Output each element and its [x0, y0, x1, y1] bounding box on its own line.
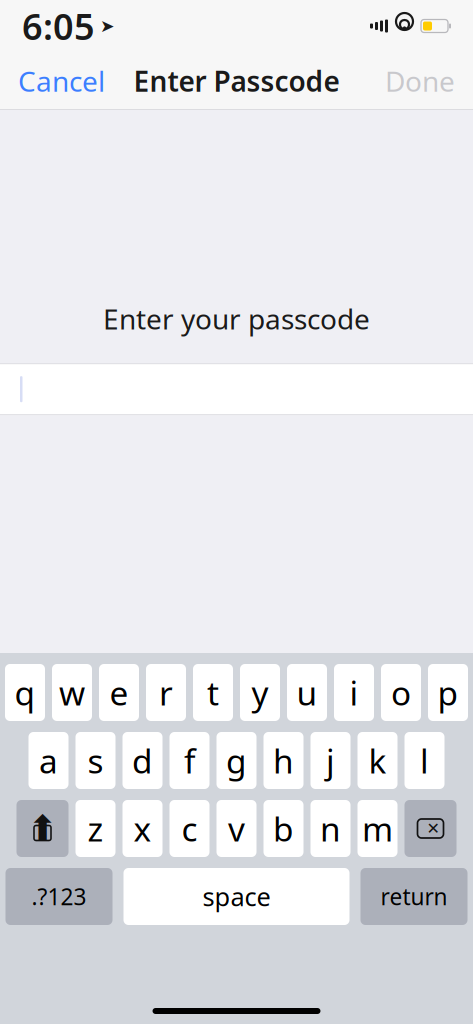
button[interactable]: q [5, 664, 45, 721]
staticText: p [437, 670, 458, 715]
staticText: Enter Passcode [133, 62, 339, 100]
button[interactable]: s [75, 732, 115, 789]
staticText: .?123 [31, 881, 86, 911]
staticText: s [87, 738, 103, 783]
button[interactable]: u [287, 664, 327, 721]
staticText: ✕ [426, 819, 439, 838]
button[interactable]: x [122, 800, 162, 857]
button[interactable]: o [381, 664, 421, 721]
button[interactable]: return [360, 868, 467, 925]
staticText: o [391, 670, 411, 715]
staticText: x [133, 806, 151, 851]
staticText: q [14, 670, 35, 715]
staticText: Cancel [18, 62, 105, 100]
button[interactable]: h [263, 732, 303, 789]
staticText: space [202, 880, 270, 913]
button[interactable]: c [169, 800, 209, 857]
staticText: t [207, 670, 219, 715]
staticText: Done [385, 62, 455, 100]
staticText: c [181, 806, 197, 851]
button[interactable]: y [240, 664, 280, 721]
staticText: e [109, 670, 128, 715]
button[interactable]: e [99, 664, 139, 721]
button[interactable]: .?123 [5, 868, 112, 925]
staticText: a [39, 738, 58, 783]
staticText: n [320, 806, 341, 851]
button[interactable]: j [310, 732, 350, 789]
button[interactable]: p [428, 664, 468, 721]
button[interactable]: n [310, 800, 350, 857]
button[interactable]: d [122, 732, 162, 789]
staticText: j [326, 738, 335, 783]
button[interactable]: m [357, 800, 397, 857]
staticText: ➤ [100, 16, 115, 36]
button[interactable]: i [334, 664, 374, 721]
button[interactable]: Delete [404, 800, 456, 857]
staticText: Enter your passcode [103, 300, 370, 337]
button[interactable]: l [404, 732, 444, 789]
staticText: return [380, 881, 447, 911]
staticText: r [159, 670, 173, 715]
button[interactable]: b [263, 800, 303, 857]
staticText: i [349, 670, 358, 715]
staticText: w [59, 670, 85, 715]
staticText: m [362, 806, 393, 851]
staticText: y [251, 670, 268, 715]
button[interactable]: Shift [16, 800, 68, 857]
button[interactable]: g [216, 732, 256, 789]
staticText: u [296, 670, 317, 715]
staticText: z [87, 806, 103, 851]
button[interactable]: r [146, 664, 186, 721]
staticText: v [228, 806, 245, 851]
staticText: d [132, 738, 153, 783]
staticText: l [420, 738, 429, 783]
staticText: 6:05 [22, 2, 95, 50]
staticText: f [184, 738, 195, 783]
button[interactable]: f [169, 732, 209, 789]
button[interactable]: Cancel [0, 50, 123, 112]
button[interactable]: z [75, 800, 115, 857]
button[interactable]: k [357, 732, 397, 789]
staticText: g [226, 738, 247, 783]
button[interactable]: space [123, 868, 349, 925]
button[interactable]: v [216, 800, 256, 857]
button[interactable]: a [28, 732, 68, 789]
button[interactable]: t [193, 664, 233, 721]
button[interactable]: Done [367, 50, 473, 112]
staticText: b [273, 806, 294, 851]
button[interactable]: w [52, 664, 92, 721]
staticText: k [368, 738, 386, 783]
staticText: ⬆ [27, 808, 57, 849]
staticText: h [273, 738, 294, 783]
